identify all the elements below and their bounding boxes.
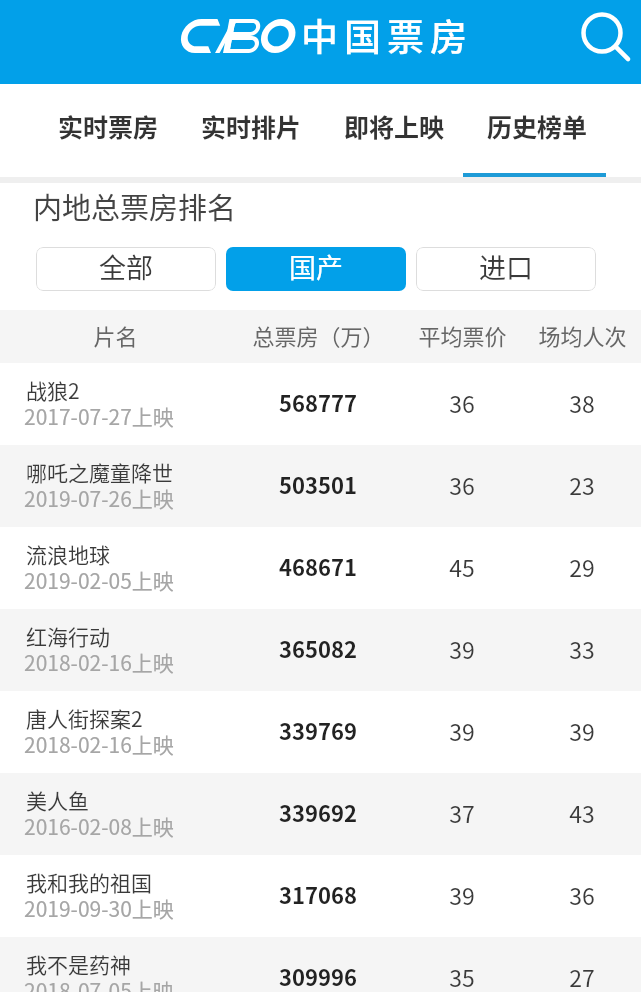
staticText: 进口 [479,247,533,286]
staticText: 2019-07-26上映 [24,483,174,513]
staticText: 2018-02-16上映 [24,729,174,759]
staticText: 实时票房 [58,108,159,144]
staticText: 红海行动 [26,621,110,651]
staticText: 战狼2 [26,375,80,405]
staticText: 我不是药神 [26,949,131,979]
staticText: 2019-09-30上映 [24,893,174,923]
staticText: 2017-07-27上映 [24,401,174,431]
button[interactable]: 唐人街探案2 [0,691,641,773]
staticText: 我和我的祖国 [26,867,152,897]
button[interactable]: 进口 [416,247,596,291]
staticText: 平均票价 [418,319,507,351]
button[interactable]: 战狼2 [0,363,641,445]
button[interactable]: 实时票房 [37,84,180,177]
button[interactable]: 即将上映 [323,84,466,177]
staticText: 2016-02-08上映 [24,811,174,841]
button[interactable]: 流浪地球 [0,527,641,609]
button[interactable]: 红海行动 [0,609,641,691]
staticText: 总票房（万） [252,319,385,351]
button[interactable]: 全部 [36,247,216,291]
staticText: 即将上映 [344,108,445,144]
staticText: 实时排片 [201,108,302,144]
button[interactable]: 历史榜单 [466,84,609,177]
staticText: 309996 [279,960,357,992]
button[interactable]: 美人鱼 [0,773,641,855]
staticText: 35 [449,960,475,992]
staticText: 哪吒之魔童降世 [26,457,173,487]
button[interactable]: 实时排片 [180,84,323,177]
staticText: 场均人次 [538,319,627,351]
staticText: 39 [449,714,475,747]
staticText: 2018-02-16上映 [24,647,174,677]
staticText: 历史榜单 [487,108,588,144]
staticText: 43 [569,796,595,829]
staticText: 23 [569,468,595,501]
staticText: 国产 [289,247,343,286]
staticText: 39 [569,714,595,747]
staticText: 全部 [99,247,153,286]
staticText: 503501 [279,468,357,500]
staticText: 2018-07-05上映 [24,975,174,992]
staticText: 38 [569,386,595,419]
button[interactable]: Search [572,3,632,63]
button[interactable]: 我和我的祖国 [0,855,641,937]
staticText: 339692 [279,796,357,828]
staticText: 36 [449,468,475,501]
button[interactable]: 国产 [226,247,406,291]
staticText: 468671 [279,550,357,582]
staticText: 37 [449,796,475,829]
button[interactable]: 哪吒之魔童降世 [0,445,641,527]
staticText: 317068 [279,878,357,910]
staticText: 568777 [279,386,357,418]
staticText: 36 [449,386,475,419]
button[interactable]: 我不是药神 [0,937,641,992]
staticText: 片名 [93,319,138,351]
staticText: 唐人街探案2 [26,703,143,733]
staticText: 36 [569,878,595,911]
staticText: 39 [449,878,475,911]
staticText: 流浪地球 [26,539,110,569]
staticText: 美人鱼 [26,785,89,815]
staticText: 内地总票房排名 [33,185,237,227]
staticText: 27 [569,960,595,992]
staticText: 365082 [279,632,357,664]
staticText: 2019-02-05上映 [24,565,174,595]
staticText: 339769 [279,714,357,746]
staticText: 29 [569,550,595,583]
staticText: 39 [449,632,475,665]
staticText: 45 [449,550,475,583]
staticText: 中国票房 [301,8,473,62]
staticText: 33 [569,632,595,665]
